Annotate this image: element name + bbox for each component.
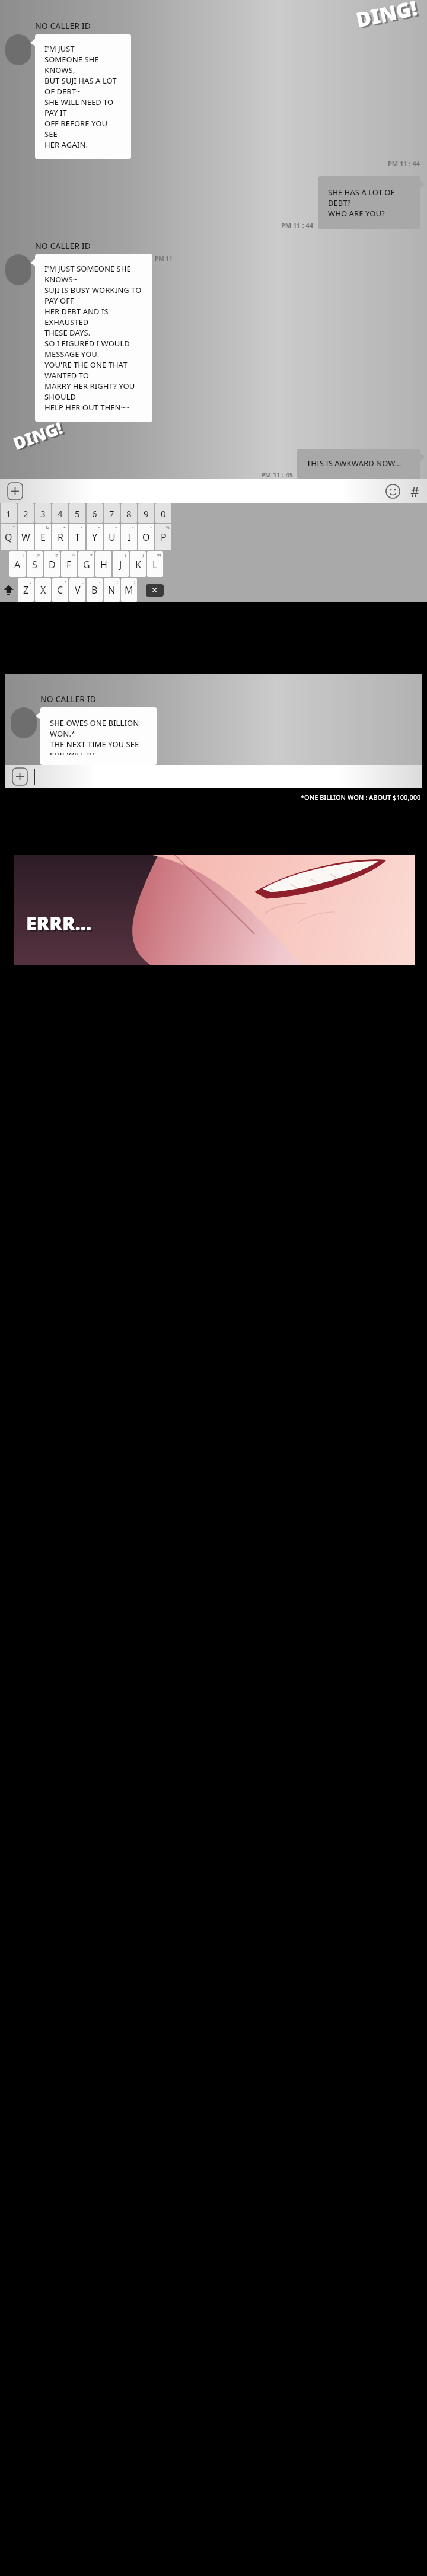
- button[interactable]: ^: [61, 551, 77, 577]
- staticText: *: [90, 553, 93, 559]
- staticText: ": [13, 525, 15, 531]
- button[interactable]: Add attachment: [12, 768, 27, 785]
- button[interactable]: W: [147, 551, 163, 577]
- staticText: O: [142, 531, 150, 544]
- staticText: #: [55, 553, 58, 559]
- staticText: X: [40, 584, 46, 597]
- button[interactable]: !: [9, 551, 26, 577]
- staticText: PM 11 : 44: [281, 221, 314, 229]
- button[interactable]: @: [27, 551, 43, 577]
- button[interactable]: ?: [18, 578, 34, 602]
- staticText: %: [166, 525, 170, 531]
- button[interactable]: :: [104, 578, 120, 602]
- staticText: ': [31, 525, 32, 531]
- button[interactable]: I'M JUST SOMEONE SHE KNOWS~ SUJI IS BUSY…: [35, 254, 152, 422]
- button[interactable]: Add attachment: [8, 483, 23, 500]
- staticText: ÷: [98, 525, 101, 531]
- button[interactable]: Contact avatar: [11, 707, 37, 738]
- button[interactable]: Contact avatar: [5, 34, 31, 65]
- button[interactable]: >: [138, 524, 154, 550]
- staticText: +: [63, 525, 66, 531]
- button[interactable]: ): [130, 551, 146, 577]
- button[interactable]: &: [35, 524, 51, 550]
- button[interactable]: (: [113, 551, 129, 577]
- button[interactable]: *: [78, 551, 94, 577]
- staticText: ERRR...: [26, 910, 92, 936]
- staticText: ^: [72, 553, 75, 559]
- staticText: /: [65, 579, 66, 585]
- button[interactable]: I'M JUST SOMEONE SHE KNOWS, BUT SUJI HAS…: [35, 34, 131, 159]
- staticText: K: [135, 558, 141, 571]
- button[interactable]: 9: [138, 503, 154, 523]
- staticText: SHE OWES ONE BILLION WON.* THE NEXT TIME…: [50, 718, 147, 755]
- staticText: M: [125, 584, 133, 597]
- button[interactable]: %: [155, 524, 171, 550]
- staticText: THIS IS AWKWARD NOW... THIS DOESN'T SEEM…: [307, 458, 411, 470]
- button[interactable]: ': [18, 524, 34, 550]
- button[interactable]: 2: [18, 503, 34, 523]
- staticText: W: [157, 553, 161, 559]
- button[interactable]: ": [1, 524, 17, 550]
- button[interactable]: 1: [1, 503, 17, 523]
- staticText: -: [108, 553, 110, 559]
- staticText: J: [119, 558, 122, 571]
- staticText: DING!: [10, 416, 66, 455]
- staticText: 0: [161, 508, 166, 519]
- button[interactable]: -: [87, 578, 103, 602]
- staticText: F: [66, 558, 72, 571]
- button[interactable]: 6: [87, 503, 103, 523]
- button[interactable]: ×: [69, 524, 85, 550]
- button[interactable]: 4: [52, 503, 68, 523]
- staticText: #: [410, 482, 419, 500]
- staticText: 4: [58, 508, 63, 519]
- staticText: &: [46, 525, 49, 531]
- button[interactable]: 5: [69, 503, 85, 523]
- button[interactable]: Emoji: [385, 484, 400, 499]
- button[interactable]: ÷: [87, 524, 103, 550]
- staticText: A: [14, 558, 21, 571]
- button[interactable]: =: [104, 524, 120, 550]
- button[interactable]: 8: [121, 503, 137, 523]
- staticText: T: [75, 531, 80, 544]
- button[interactable]: SHE HAS A LOT OF DEBT? WHO ARE YOU?: [318, 176, 420, 229]
- button[interactable]: 7: [104, 503, 120, 523]
- staticText: S: [32, 558, 37, 571]
- staticText: DING!: [356, 0, 422, 35]
- button[interactable]: <: [121, 524, 137, 550]
- staticText: DING!: [354, 0, 420, 33]
- staticText: =: [115, 525, 118, 531]
- button[interactable]: -: [95, 551, 111, 577]
- button[interactable]: +: [52, 524, 68, 550]
- staticText: N: [108, 584, 116, 597]
- staticText: I'M JUST SOMEONE SHE KNOWS~ SUJI IS BUSY…: [44, 263, 143, 413]
- button[interactable]: /: [52, 578, 68, 602]
- staticText: G: [83, 558, 90, 571]
- staticText: V: [75, 584, 81, 597]
- staticText: Q: [5, 531, 12, 544]
- staticText: *ONE BILLION WON : ABOUT $100,000: [301, 793, 421, 802]
- staticText: B: [91, 584, 98, 597]
- button[interactable]: Contact avatar: [5, 254, 31, 285]
- staticText: Y: [92, 531, 98, 544]
- button[interactable]: ,: [69, 578, 85, 602]
- staticText: U: [109, 531, 116, 544]
- button[interactable]: 0: [155, 503, 171, 523]
- staticText: NO CALLER ID: [40, 693, 96, 704]
- staticText: 3: [40, 508, 46, 519]
- staticText: 6: [92, 508, 97, 519]
- button[interactable]: 3: [35, 503, 51, 523]
- button[interactable]: THIS IS AWKWARD NOW... THIS DOESN'T SEEM…: [297, 449, 420, 479]
- staticText: ): [142, 553, 144, 559]
- staticText: @: [37, 553, 41, 559]
- button[interactable]: SHE OWES ONE BILLION WON.* THE NEXT TIME…: [40, 707, 157, 765]
- staticText: ERRR...: [28, 912, 94, 938]
- staticText: <: [132, 525, 135, 531]
- button[interactable]: #: [44, 551, 60, 577]
- staticText: PM 11 : 45: [261, 470, 294, 479]
- button[interactable]: ;: [121, 578, 137, 602]
- button[interactable]: Shift: [0, 578, 17, 602]
- button[interactable]: Backspace: [138, 578, 172, 602]
- staticText: (: [125, 553, 127, 559]
- button[interactable]: ~: [35, 578, 51, 602]
- staticText: E: [40, 531, 46, 544]
